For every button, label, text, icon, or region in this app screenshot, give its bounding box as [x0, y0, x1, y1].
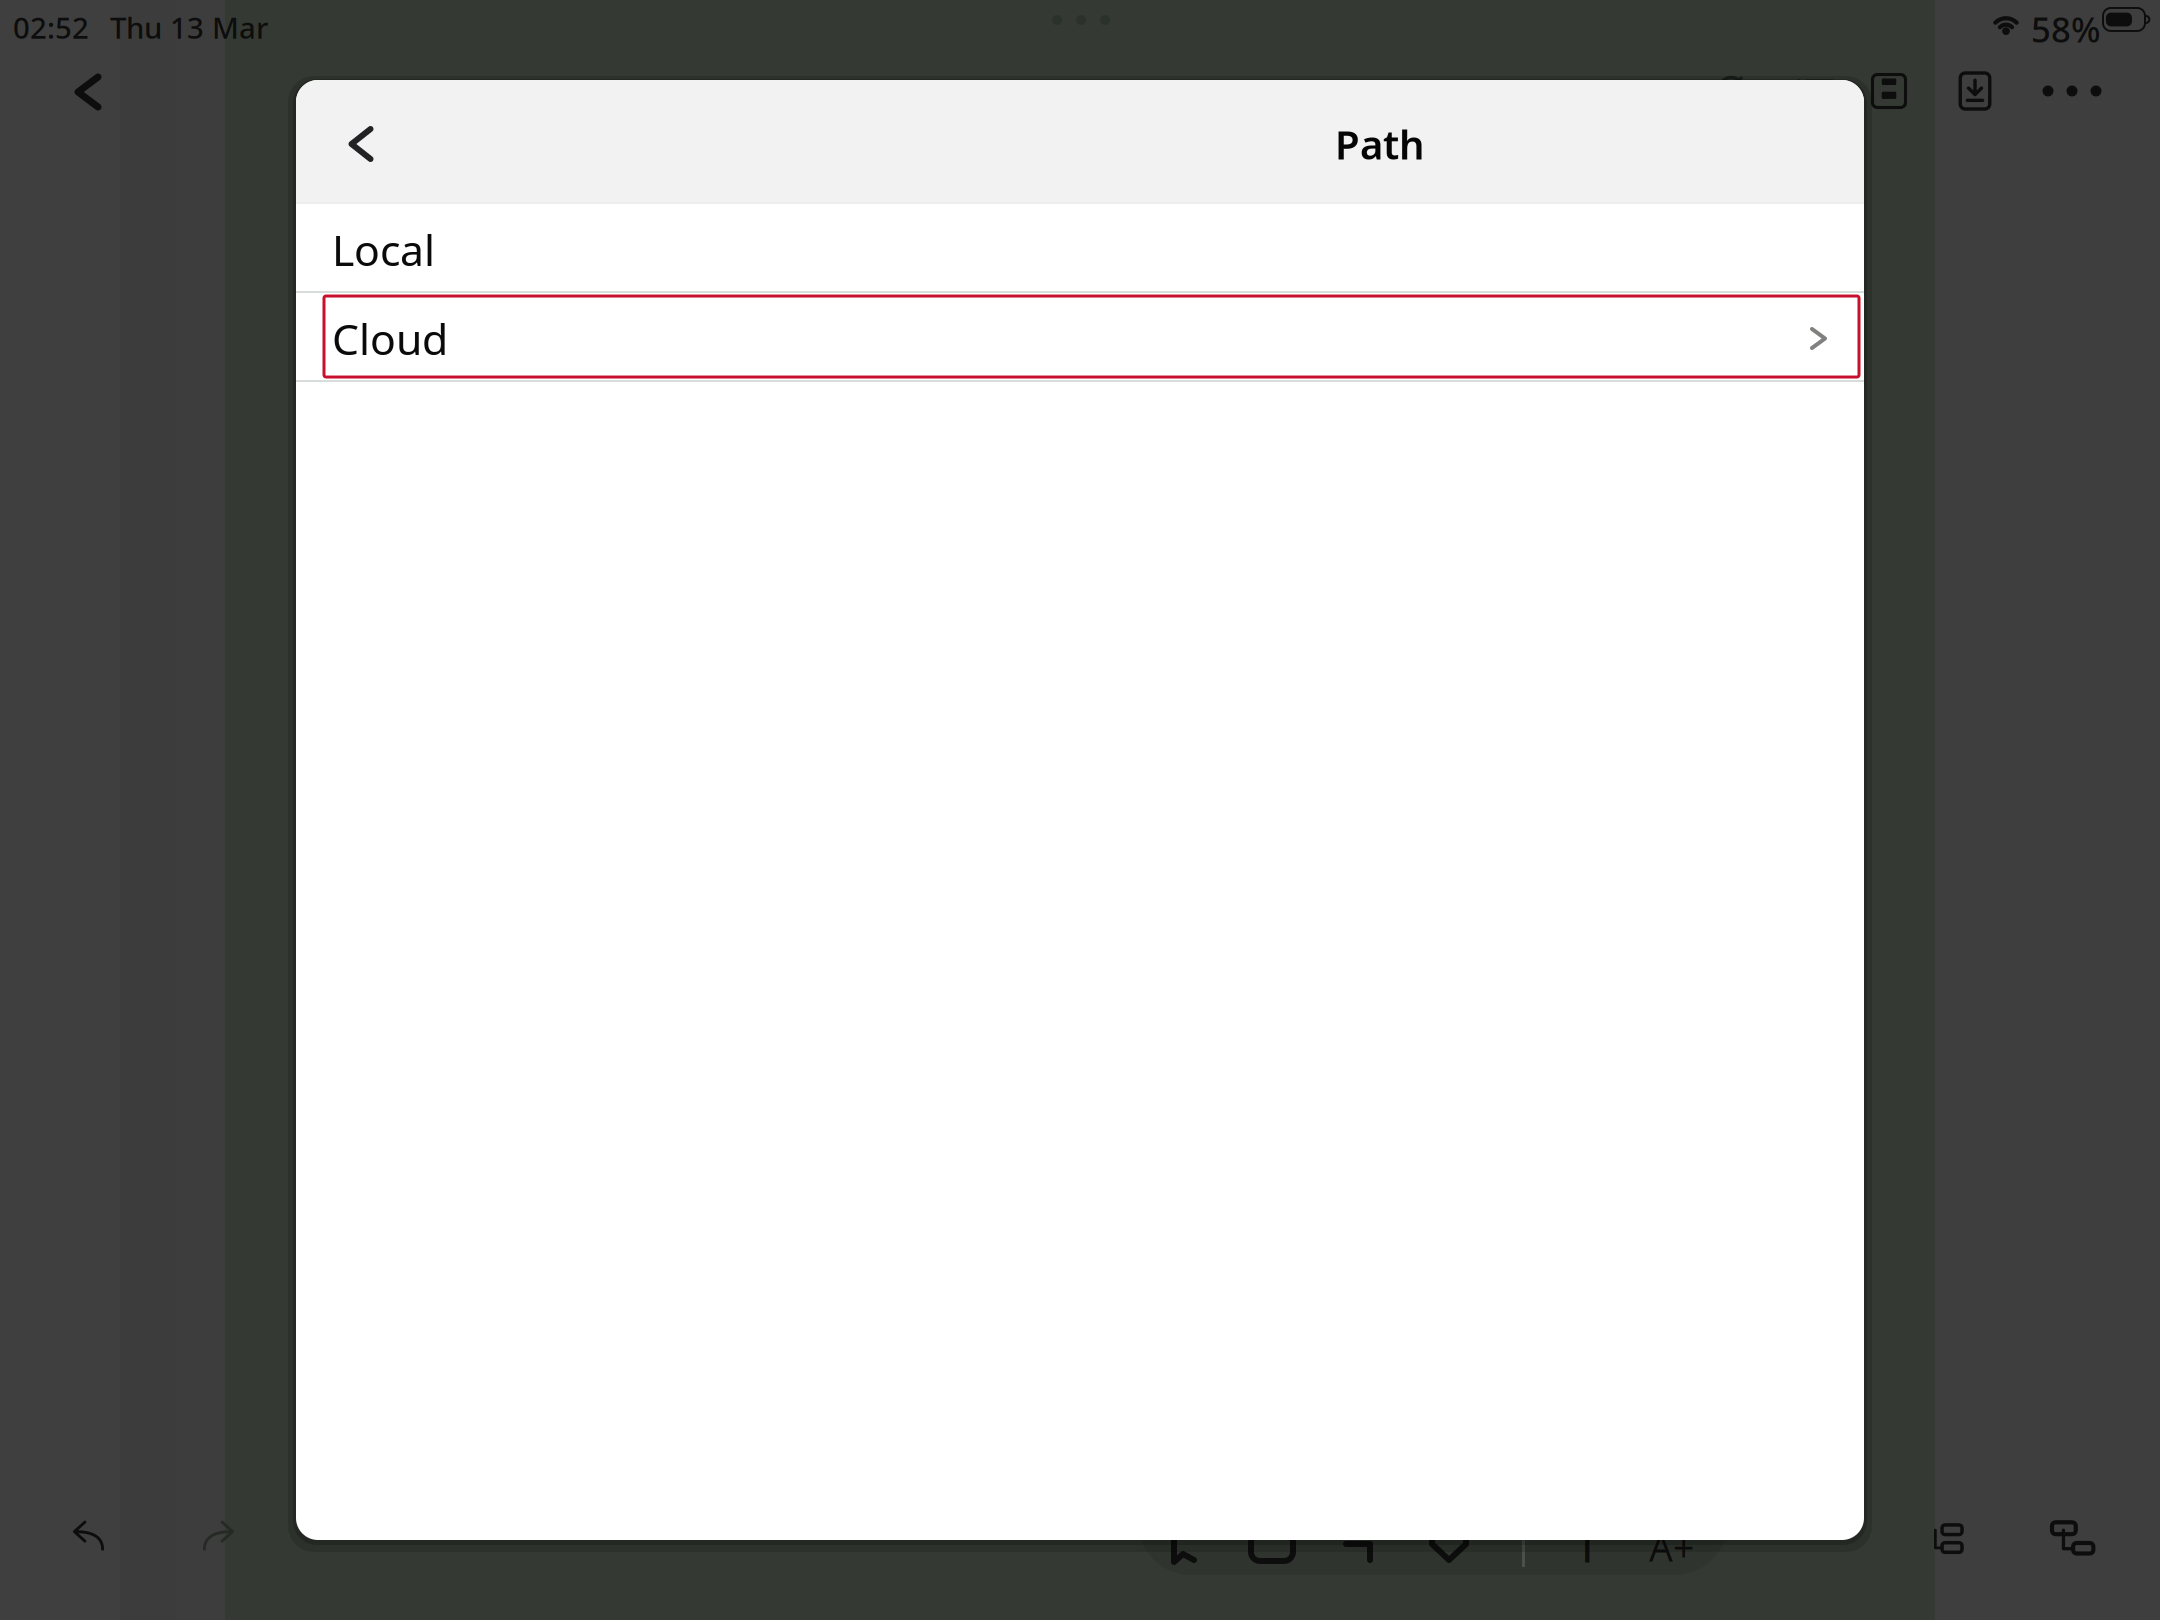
button[interactable]: Back — [299, 83, 423, 205]
button[interactable]: More — [2028, 47, 2116, 135]
staticText: Thu 13 Mar — [110, 8, 268, 47]
button[interactable]: Search — [1690, 47, 1778, 135]
button[interactable]: Redo — [170, 1487, 266, 1583]
staticText: 58% — [2031, 6, 2101, 52]
button[interactable]: Arrange layout — [1897, 1491, 1993, 1587]
staticText: T — [1576, 1520, 1598, 1573]
staticText: Path — [1335, 117, 1425, 170]
button[interactable]: Arrange outline — [2026, 1491, 2122, 1587]
button[interactable]: Outline — [1770, 47, 1858, 135]
staticText: 02:52 — [13, 8, 89, 47]
staticText: A+ — [1649, 1522, 1694, 1572]
staticText: Cloud — [332, 310, 448, 367]
button[interactable]: Save — [1845, 47, 1933, 135]
button[interactable]: Cloud — [296, 293, 1864, 382]
staticText: Local — [332, 221, 435, 278]
button[interactable]: Undo — [41, 1487, 137, 1583]
button[interactable]: Import — [1931, 47, 2019, 135]
button[interactable]: Back — [38, 42, 138, 142]
button[interactable]: Local — [296, 204, 1864, 293]
